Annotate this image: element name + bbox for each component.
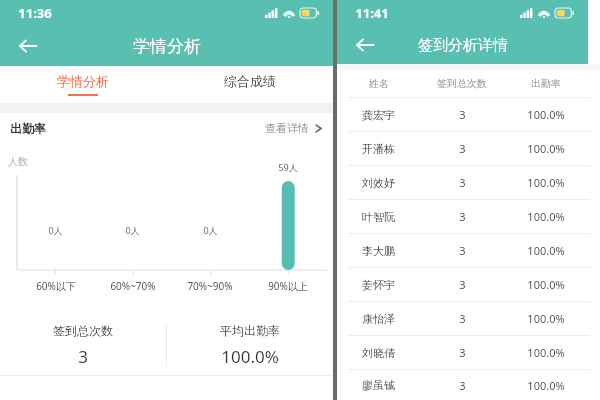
staticText: 出勤率 <box>531 77 561 90</box>
staticText: 刘晓倩 <box>362 346 395 360</box>
staticText: 叶智阮 <box>362 210 395 224</box>
button[interactable]: 签到总次数 <box>0 315 166 375</box>
staticText: 59人 <box>278 161 298 173</box>
staticText: 姜怀宇 <box>362 278 395 292</box>
staticText: 11:36 <box>18 4 52 22</box>
staticText: 3 <box>459 277 466 292</box>
staticText: 60%以下 <box>36 279 76 293</box>
staticText: 3 <box>459 243 466 258</box>
staticText: 100.0% <box>527 209 565 224</box>
button[interactable]: 刘晓倩 <box>337 336 600 369</box>
staticText: 3 <box>459 209 466 224</box>
staticText: 100.0% <box>527 311 565 326</box>
staticText: 100.0% <box>527 141 565 156</box>
staticText: 100.0% <box>527 243 565 258</box>
staticText: 100.0% <box>221 345 279 368</box>
staticText: 70%~90% <box>187 279 233 293</box>
staticText: 姓名 <box>369 77 389 90</box>
button[interactable]: 姓名 <box>337 70 600 97</box>
staticText: 查看详情 <box>265 121 309 135</box>
button[interactable]: 综合成绩 <box>166 66 333 103</box>
staticText: 3 <box>459 378 466 393</box>
button[interactable]: 龚宏宇 <box>337 98 600 131</box>
button[interactable]: 李大鹏 <box>337 234 600 267</box>
staticText: 60%~70% <box>110 279 156 293</box>
button[interactable]: 学情分析 <box>0 66 166 103</box>
staticText: 3 <box>459 107 466 122</box>
button[interactable]: Back <box>8 26 48 66</box>
staticText: 90%以上 <box>268 279 308 293</box>
staticText: 3 <box>459 141 466 156</box>
staticText: 签到总次数 <box>53 323 113 338</box>
staticText: 100.0% <box>527 175 565 190</box>
button[interactable]: 平均出勤率 <box>167 315 333 375</box>
staticText: 刘效妤 <box>362 176 395 190</box>
staticText: 签到分析详情 <box>418 36 508 55</box>
button[interactable]: 开潘栋 <box>337 132 600 165</box>
button[interactable]: Back <box>345 26 385 64</box>
staticText: 平均出勤率 <box>220 323 280 338</box>
staticText: 100.0% <box>527 378 565 393</box>
staticText: 李大鹏 <box>362 244 395 258</box>
staticText: 0人 <box>48 224 63 236</box>
staticText: 龚宏宇 <box>362 108 395 122</box>
staticText: 0人 <box>125 224 140 236</box>
staticText: 学情分析 <box>57 73 109 89</box>
staticText: 签到总次数 <box>437 77 487 90</box>
staticText: 3 <box>459 175 466 190</box>
button[interactable]: 姜怀宇 <box>337 268 600 301</box>
staticText: 学情分析 <box>133 36 201 57</box>
staticText: 3 <box>78 345 88 368</box>
button[interactable]: 出勤率 <box>0 113 333 143</box>
button[interactable]: 廖虽铖 <box>337 370 600 400</box>
staticText: 3 <box>459 311 466 326</box>
staticText: 3 <box>459 345 466 360</box>
button[interactable]: 康怡泽 <box>337 302 600 335</box>
staticText: 综合成绩 <box>224 73 276 89</box>
staticText: 100.0% <box>527 107 565 122</box>
staticText: 出勤率 <box>10 121 46 136</box>
staticText: 康怡泽 <box>362 312 395 326</box>
staticText: 廖虽铖 <box>362 378 395 392</box>
staticText: 人数 <box>8 155 28 168</box>
staticText: 11:41 <box>355 4 389 22</box>
staticText: 100.0% <box>527 277 565 292</box>
button[interactable]: 刘效妤 <box>337 166 600 199</box>
staticText: 开潘栋 <box>362 142 395 156</box>
staticText: 0人 <box>203 224 218 236</box>
button[interactable]: 叶智阮 <box>337 200 600 233</box>
staticText: 100.0% <box>527 345 565 360</box>
